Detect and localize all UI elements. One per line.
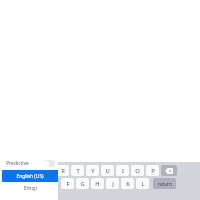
staticText: return (158, 181, 172, 187)
staticText: L (141, 180, 145, 188)
staticText: F (66, 180, 70, 188)
staticText: Emoji (24, 185, 37, 192)
button[interactable]: H (91, 178, 104, 189)
button[interactable]: U (101, 165, 114, 176)
button[interactable]: I (116, 165, 129, 176)
staticText: G (80, 180, 85, 188)
button[interactable]: J (106, 178, 119, 189)
staticText: Y (91, 167, 95, 175)
staticText: R (61, 167, 65, 175)
staticText: O (135, 167, 140, 175)
button[interactable]: R (56, 165, 69, 176)
button[interactable]: F (61, 178, 74, 189)
staticText: Predictive (6, 160, 29, 167)
button[interactable]: K (121, 178, 134, 189)
button[interactable]: English (US) (2, 170, 58, 182)
staticText: T (76, 167, 80, 175)
button[interactable]: O (131, 165, 144, 176)
button[interactable]: Y (86, 165, 99, 176)
button[interactable]: P (146, 165, 159, 176)
button[interactable]: Predictive toggle (43, 160, 55, 167)
staticText: P (151, 167, 155, 175)
button[interactable]: L (136, 178, 149, 189)
staticText: K (126, 180, 130, 188)
button[interactable]: Predictive (2, 157, 58, 170)
button[interactable]: G (76, 178, 89, 189)
staticText: U (105, 167, 110, 175)
staticText: H (95, 180, 100, 188)
button[interactable]: T (71, 165, 84, 176)
staticText: J (112, 180, 114, 188)
staticText: I (122, 167, 124, 175)
button[interactable]: Emoji (2, 182, 58, 194)
button[interactable]: return (153, 178, 176, 189)
staticText: English (US) (16, 173, 44, 180)
button[interactable]: Delete (161, 165, 177, 176)
